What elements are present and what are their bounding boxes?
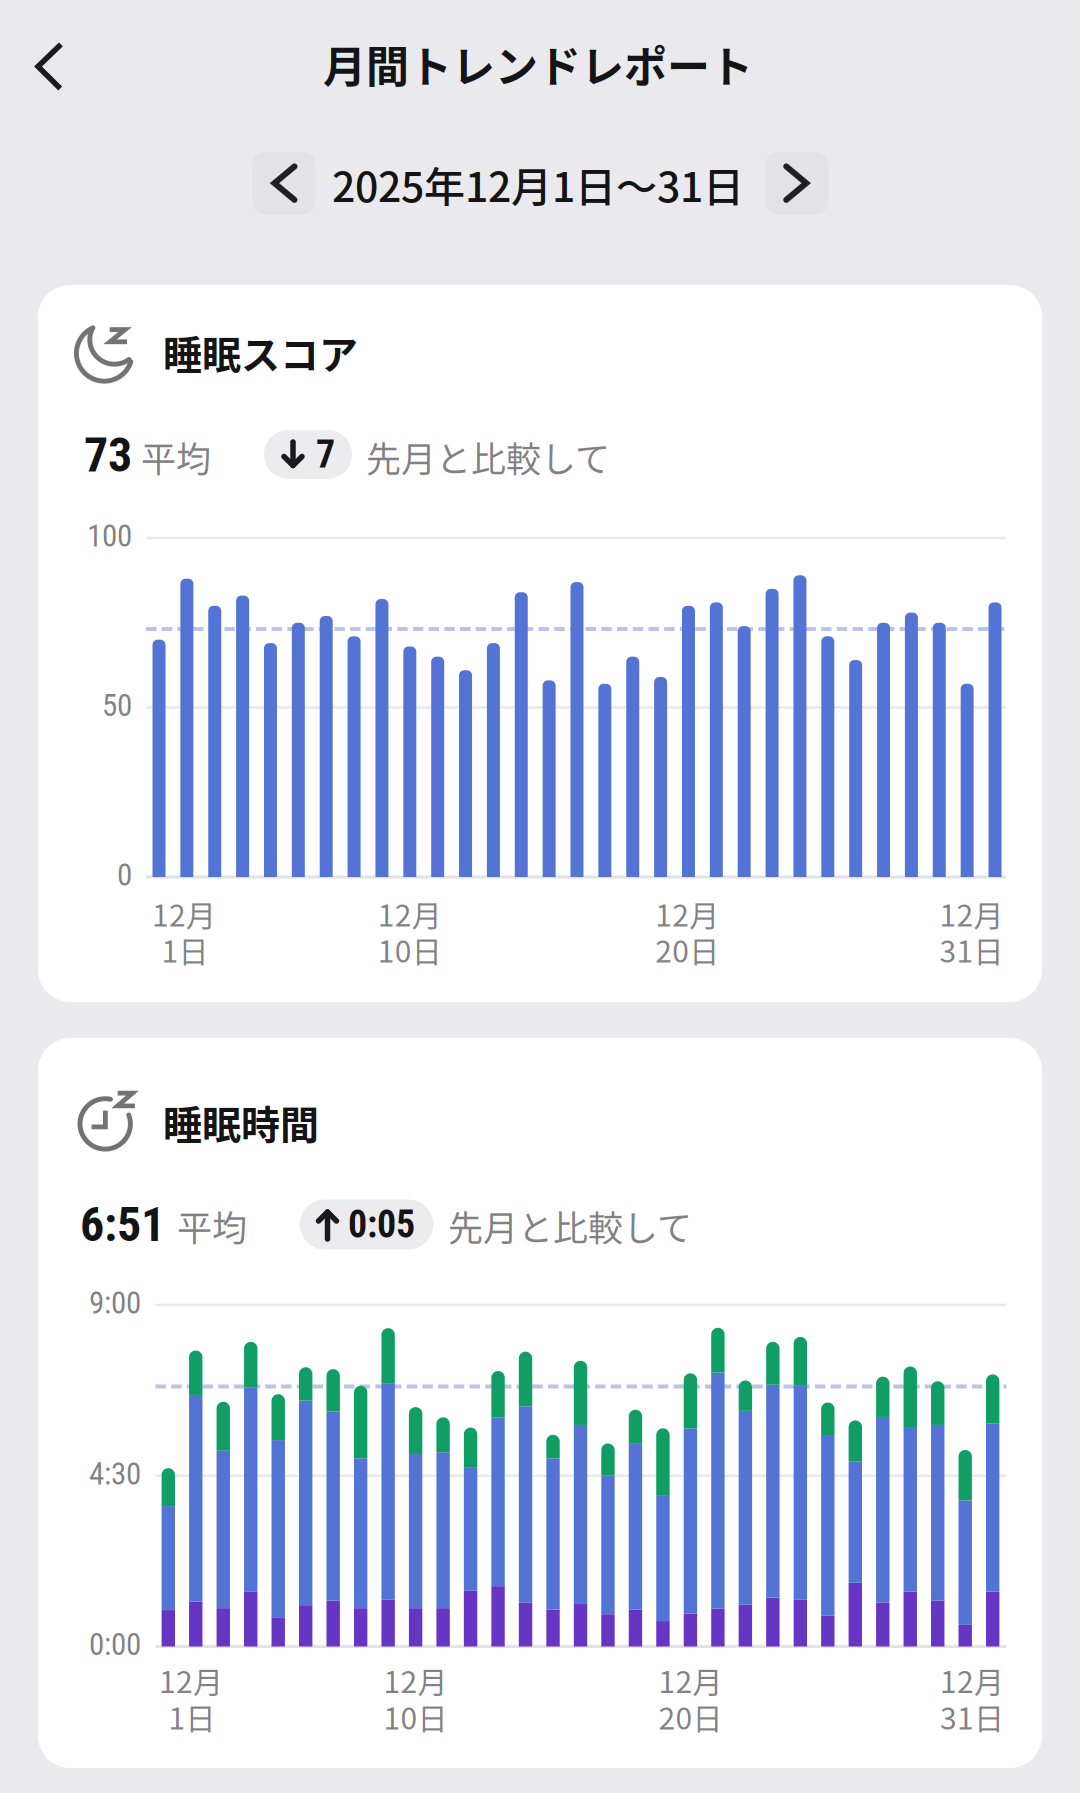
staticText: 12月	[655, 892, 719, 935]
staticText: 12月	[658, 1658, 722, 1702]
staticText: 7	[316, 432, 335, 477]
staticText: 0	[117, 857, 132, 893]
staticText: 9:00	[89, 1285, 141, 1321]
staticText: 73	[84, 427, 132, 483]
staticText: 31日	[939, 928, 1003, 971]
staticText: 10日	[378, 928, 442, 971]
button[interactable]	[252, 152, 316, 214]
staticText: 6:51	[80, 1196, 165, 1253]
staticText: 0:05	[348, 1202, 415, 1247]
staticText: 100	[87, 518, 132, 554]
button[interactable]	[16, 32, 80, 104]
staticText: 20日	[655, 928, 719, 971]
staticText: 月間トレンドレポート	[323, 33, 753, 95]
staticText: 10日	[384, 1695, 448, 1738]
staticText: 12月	[152, 892, 216, 935]
staticText: 31日	[940, 1695, 1004, 1738]
staticText: 1日	[161, 928, 208, 971]
staticText: 4:30	[89, 1456, 141, 1492]
staticText: 50	[102, 687, 132, 724]
staticText: 平均	[177, 1201, 247, 1251]
staticText: 2025年12月1日〜31日	[332, 154, 744, 214]
staticText: 先月と比較して	[448, 1201, 692, 1251]
staticText: 12月	[378, 892, 442, 935]
staticText: 12月	[159, 1658, 223, 1702]
staticText: 先月と比較して	[366, 432, 610, 482]
staticText: 平均	[141, 432, 211, 482]
button[interactable]	[765, 152, 828, 214]
staticText: 12月	[384, 1658, 448, 1702]
staticText: 睡眠時間	[163, 1094, 319, 1150]
staticText: 1日	[168, 1695, 215, 1738]
staticText: 睡眠スコア	[163, 324, 358, 380]
staticText: 12月	[939, 892, 1003, 935]
staticText: 20日	[658, 1695, 722, 1738]
staticText: 12月	[940, 1658, 1004, 1702]
staticText: 0:00	[89, 1626, 141, 1663]
